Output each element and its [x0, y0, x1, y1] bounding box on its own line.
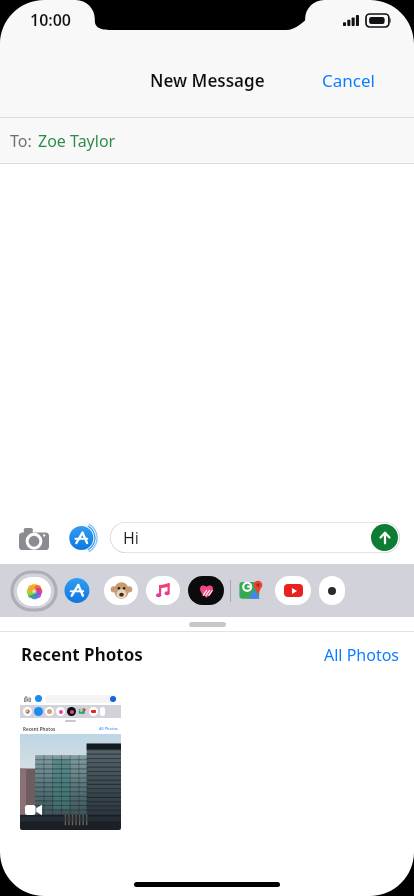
staticText: Hi	[123, 527, 139, 549]
button[interactable]: Hi	[110, 522, 400, 553]
button[interactable]: Photos	[12, 572, 56, 610]
staticText: All Photos	[324, 644, 400, 666]
button[interactable]: Google Maps	[237, 576, 267, 606]
button[interactable]: Camera	[18, 522, 50, 554]
staticText: All Photos	[99, 726, 118, 731]
button[interactable]: Send	[371, 524, 398, 551]
button[interactable]: Music	[146, 576, 180, 605]
button[interactable]: Digital Touch	[188, 576, 224, 605]
button[interactable]: YouTube	[275, 576, 311, 605]
staticText: Recent Photos	[21, 643, 143, 666]
staticText: To:	[10, 130, 32, 152]
button[interactable]: Recent photo	[20, 692, 121, 830]
staticText: New Message	[150, 69, 265, 92]
staticText: Zoe Taylor	[38, 130, 116, 152]
button[interactable]: All Photos	[310, 636, 414, 674]
staticText: Cancel	[322, 69, 375, 92]
button[interactable]: To:	[0, 118, 414, 163]
button[interactable]: App Store	[68, 523, 98, 553]
staticText: 10:00	[30, 9, 72, 31]
button[interactable]: Cancel	[312, 61, 385, 100]
button[interactable]: Memoji	[104, 576, 138, 605]
button[interactable]: App Store	[62, 576, 96, 605]
button[interactable]: More apps	[319, 576, 345, 605]
staticText: Recent Photos	[23, 726, 56, 732]
